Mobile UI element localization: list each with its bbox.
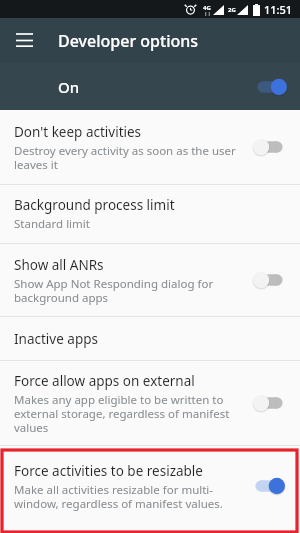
staticText: Force allow apps on external bbox=[14, 372, 195, 390]
button[interactable]: Force allow apps on external bbox=[0, 361, 300, 445]
button[interactable]: Toggle off bbox=[252, 269, 286, 291]
button[interactable]: Toggle on bbox=[254, 76, 288, 98]
button[interactable]: Toggle on bbox=[252, 475, 286, 497]
button[interactable]: Don't keep activities bbox=[0, 110, 300, 184]
button[interactable]: Background process limit bbox=[0, 185, 300, 243]
button[interactable]: Toggle off bbox=[252, 392, 286, 414]
staticText: 4G bbox=[203, 4, 211, 12]
button[interactable]: Force activities to be resizable bbox=[0, 446, 300, 526]
staticText: Standard limit bbox=[14, 216, 90, 232]
staticText: Make all activities resizable for multi-… bbox=[14, 482, 223, 511]
button[interactable]: Toggle off bbox=[252, 136, 286, 158]
staticText: Developer options bbox=[58, 30, 199, 52]
button[interactable]: Inactive apps bbox=[0, 317, 300, 360]
staticText: Destroy every activity as soon as the us… bbox=[14, 143, 236, 172]
staticText: Inactive apps bbox=[14, 330, 98, 348]
staticText: Makes any app eligible to be written to … bbox=[14, 392, 230, 435]
staticText: 2G bbox=[228, 6, 236, 14]
staticText: Show all ANRs bbox=[14, 256, 104, 274]
staticText: 11:51 bbox=[264, 2, 293, 17]
button[interactable]: On bbox=[0, 63, 300, 110]
staticText: Background process limit bbox=[14, 196, 175, 214]
button[interactable]: Show all ANRs bbox=[0, 244, 300, 316]
button[interactable]: Open navigation menu bbox=[9, 25, 40, 56]
staticText: Force activities to be resizable bbox=[14, 462, 203, 480]
staticText: Show App Not Responding dialog for backg… bbox=[14, 276, 214, 305]
staticText: On bbox=[58, 77, 80, 97]
staticText: Don't keep activities bbox=[14, 123, 142, 141]
